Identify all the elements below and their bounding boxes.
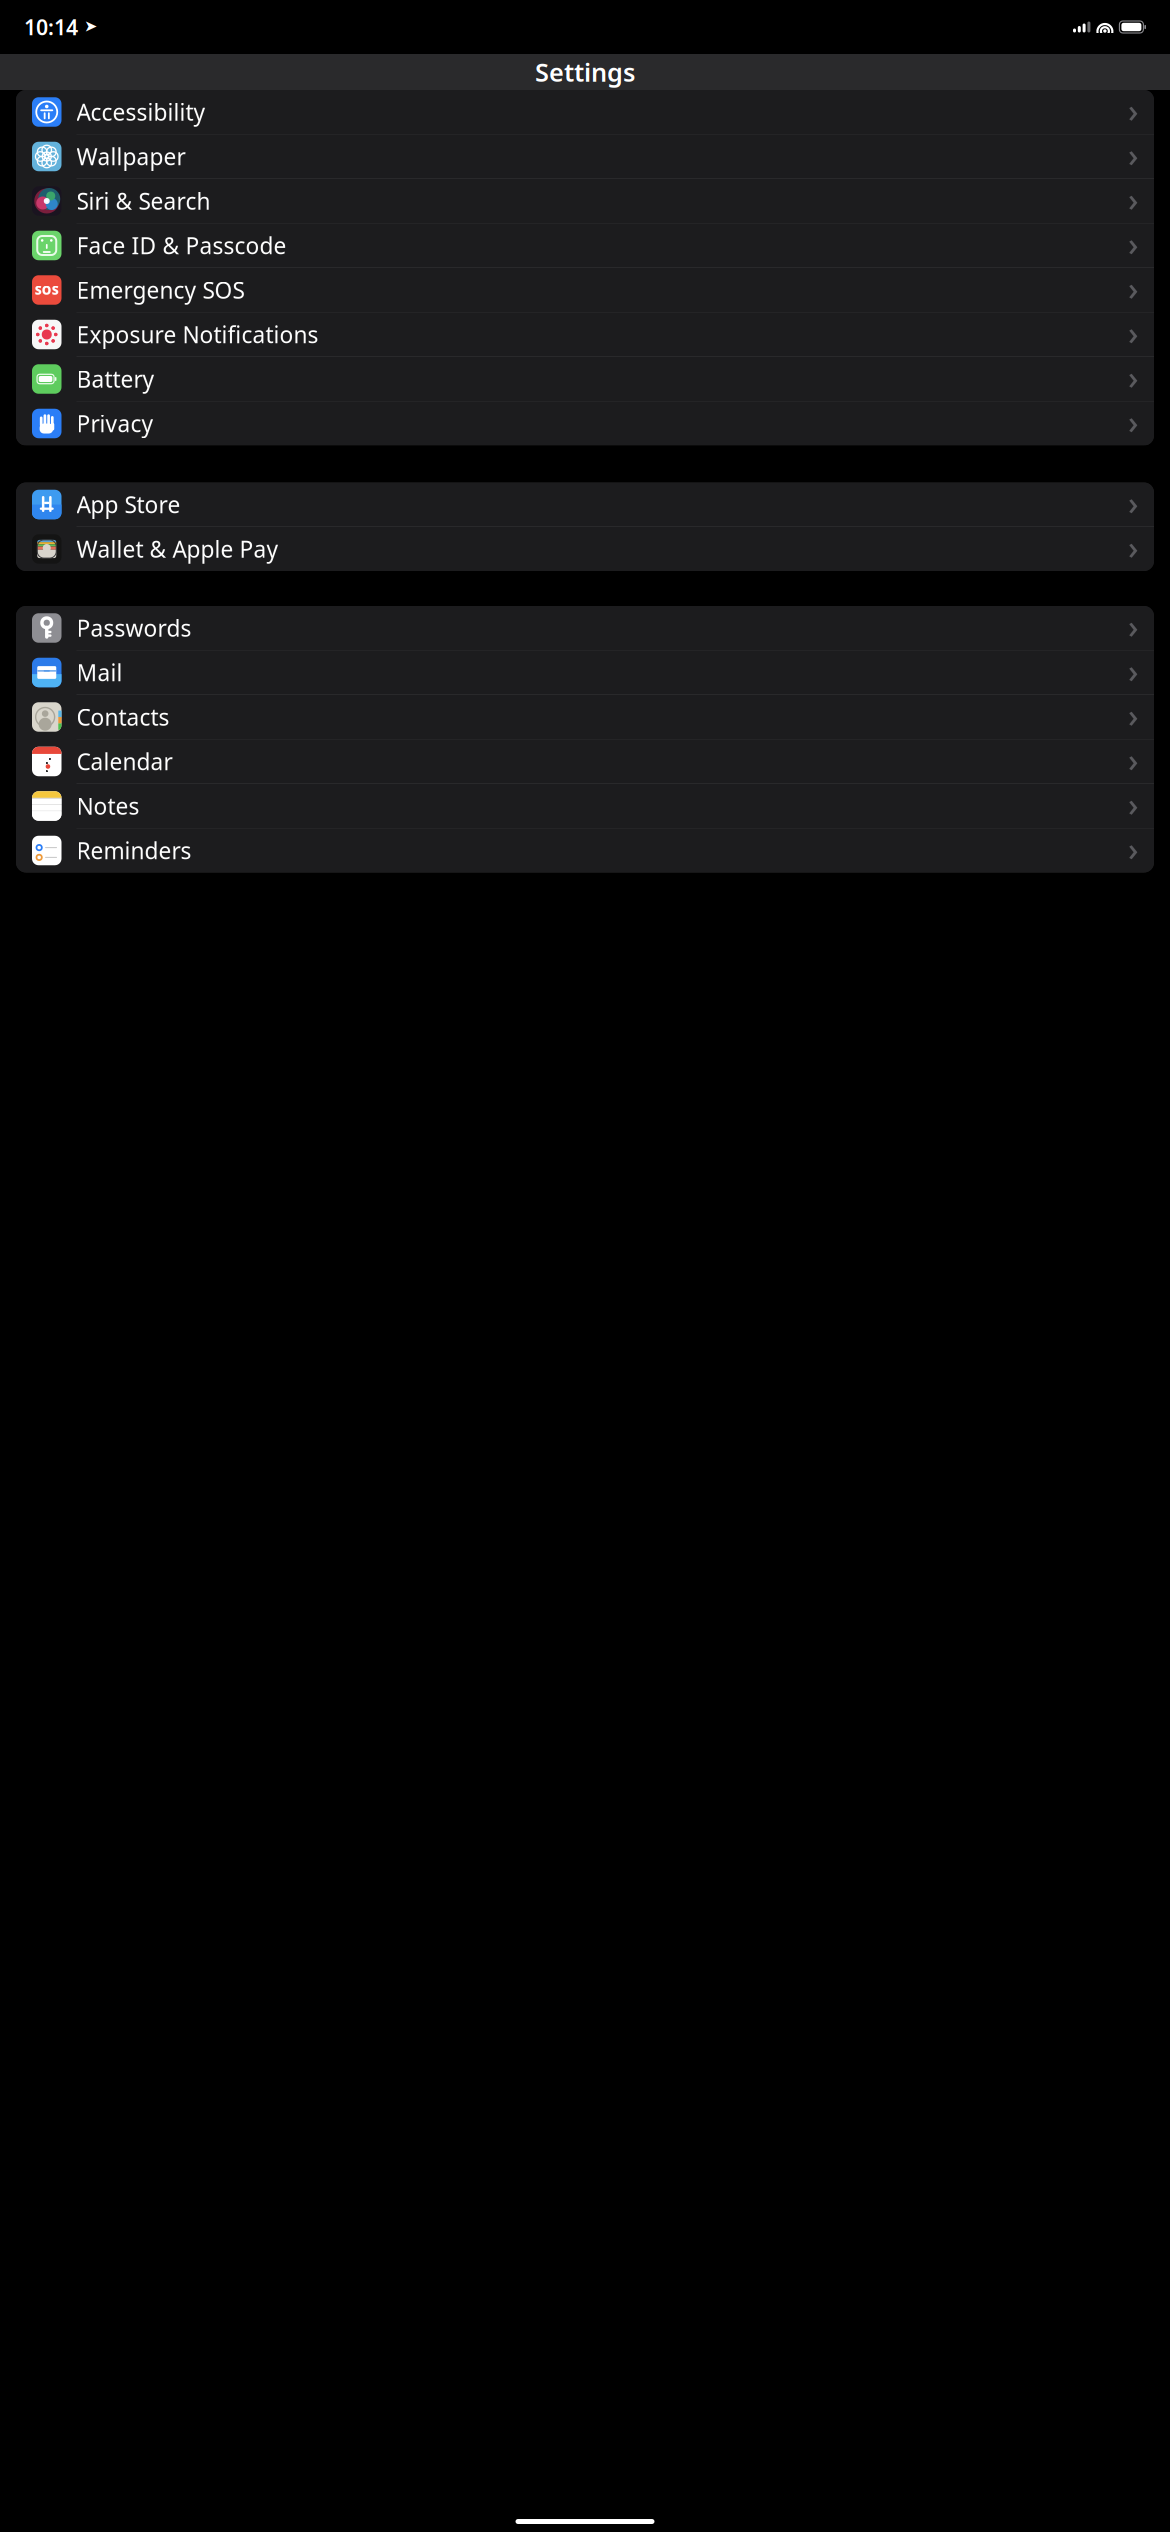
staticText: Passwords <box>76 613 191 643</box>
button[interactable]: Wallet & Apple Pay <box>16 527 1154 571</box>
staticText: › <box>1128 481 1138 524</box>
staticText: Accessibility <box>76 97 205 127</box>
button[interactable]: Face ID & Passcode <box>16 223 1154 268</box>
staticText: Emergency SOS <box>76 275 244 305</box>
staticText: Exposure Notifications <box>76 319 318 349</box>
staticText: › <box>1128 356 1138 398</box>
staticText: Face ID & Passcode <box>76 230 286 260</box>
staticText: Wallet & Apple Pay <box>76 534 278 564</box>
staticText: › <box>1128 783 1138 825</box>
staticText: › <box>1128 400 1138 443</box>
staticText: ➤ <box>84 17 97 35</box>
staticText: › <box>1128 605 1138 647</box>
staticText: › <box>1128 178 1138 220</box>
button[interactable]: Accessibility <box>16 90 1154 134</box>
button[interactable]: Reminders <box>16 828 1154 872</box>
button[interactable]: Notes <box>16 784 1154 828</box>
staticText: › <box>1128 89 1138 131</box>
staticText: Siri & Search <box>76 186 210 216</box>
staticText: App Store <box>76 489 180 519</box>
staticText: Calendar <box>76 746 172 776</box>
button[interactable]: SOS <box>16 268 1154 312</box>
button[interactable]: Calendar <box>16 739 1154 784</box>
button[interactable]: Battery <box>16 357 1154 401</box>
staticText: Privacy <box>76 408 153 438</box>
staticText: Reminders <box>76 835 191 865</box>
button[interactable]: Siri & Search <box>16 179 1154 223</box>
staticText: 10:14 <box>24 13 78 41</box>
staticText: › <box>1128 738 1138 781</box>
button[interactable]: Mail <box>16 650 1154 695</box>
staticText: Settings <box>535 55 635 89</box>
button[interactable]: Wallpaper <box>16 134 1154 179</box>
staticText: › <box>1128 694 1138 736</box>
staticText: Notes <box>76 791 139 821</box>
staticText: › <box>1128 649 1138 692</box>
staticText: › <box>1128 311 1138 354</box>
staticText: Battery <box>76 364 154 394</box>
staticText: › <box>1128 133 1138 176</box>
button[interactable]: Privacy <box>16 401 1154 445</box>
staticText: › <box>1128 526 1138 568</box>
staticText: Mail <box>76 657 122 687</box>
button[interactable]: Passwords <box>16 606 1154 650</box>
button[interactable]: Exposure Notifications <box>16 312 1154 357</box>
staticText: SOS <box>35 282 59 298</box>
staticText: Contacts <box>76 702 169 732</box>
button[interactable]: App Store <box>16 482 1154 527</box>
button[interactable]: Contacts <box>16 695 1154 739</box>
staticText: › <box>1128 222 1138 265</box>
staticText: Wallpaper <box>76 141 185 171</box>
staticText: › <box>1128 267 1138 309</box>
staticText: › <box>1128 827 1138 870</box>
